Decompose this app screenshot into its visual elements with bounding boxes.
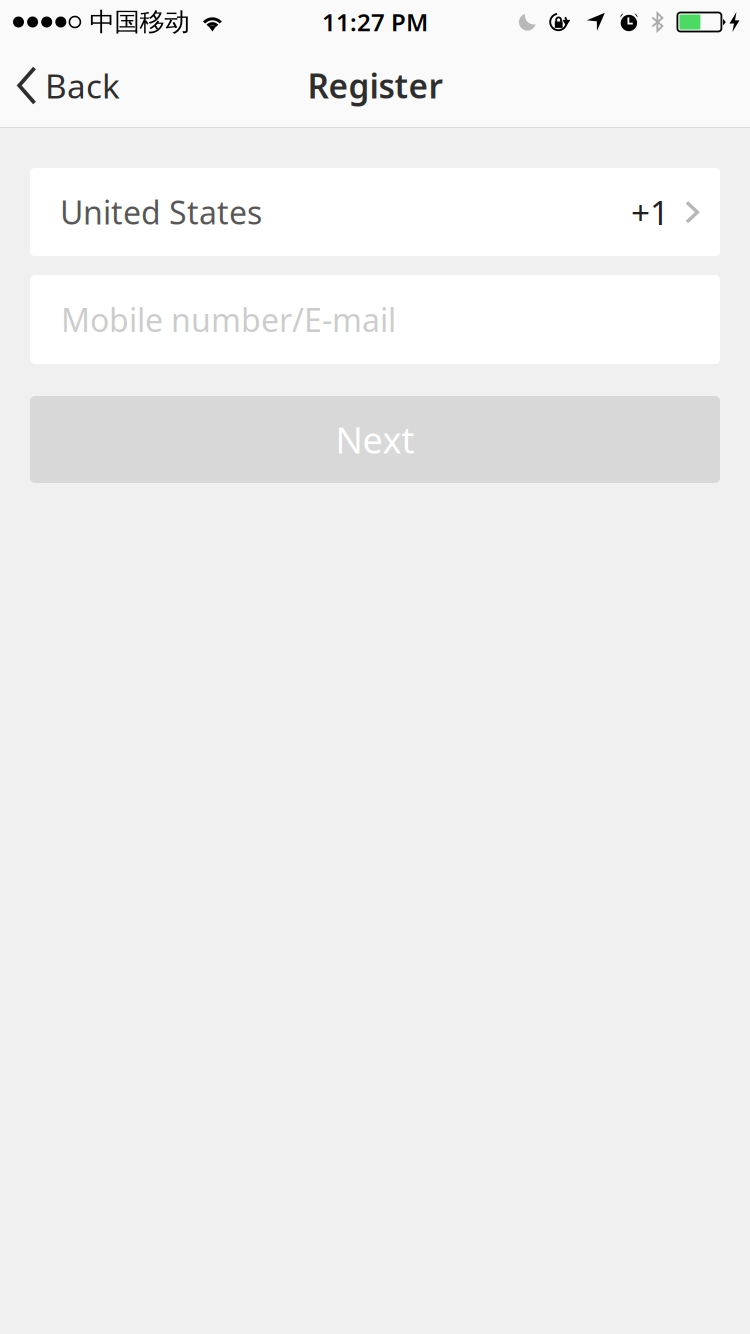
staticText: 中国移动 (89, 6, 189, 37)
button[interactable]: Back (0, 44, 138, 127)
staticText: 11:27 PM (322, 6, 428, 38)
button[interactable]: United States (30, 168, 720, 256)
staticText: +1 (631, 190, 669, 234)
button[interactable]: Mobile number/E-mail (30, 275, 720, 364)
button[interactable]: Next (30, 396, 720, 483)
staticText: United States (60, 191, 262, 233)
staticText: Back (45, 63, 120, 108)
staticText: Register (307, 63, 442, 108)
staticText: Next (335, 416, 414, 463)
staticText: Mobile number/E-mail (61, 298, 396, 341)
